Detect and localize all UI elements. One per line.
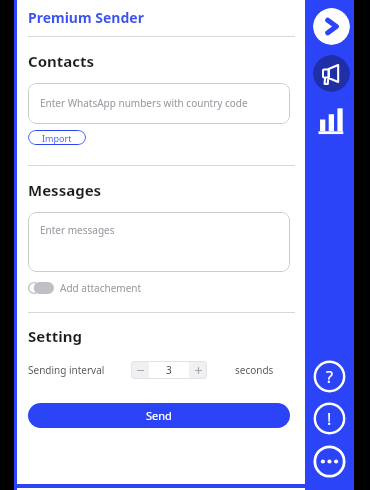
staticText: Sending interval [28, 363, 105, 377]
button[interactable]: Broadcast [313, 55, 350, 92]
staticText: 3 [166, 363, 172, 377]
button[interactable]: Enter WhatsApp numbers with country code [28, 83, 290, 124]
staticText: seconds [235, 363, 274, 377]
staticText: Add attachement [60, 281, 142, 295]
staticText: Premium Sender [28, 8, 144, 27]
staticText: Setting [28, 326, 82, 346]
staticText: Enter WhatsApp numbers with country code [40, 96, 248, 110]
button[interactable]: Information [313, 402, 346, 435]
button[interactable]: Statistics [316, 104, 347, 135]
button[interactable]: Import [28, 130, 86, 145]
staticText: Import [42, 132, 72, 144]
staticText: ! [327, 408, 332, 430]
button[interactable]: Expand [313, 8, 350, 45]
button[interactable]: Add attachement [28, 279, 142, 297]
button[interactable]: More options [313, 445, 346, 478]
staticText: Messages [28, 180, 102, 200]
staticText: Send [146, 408, 172, 423]
button[interactable]: Increase interval [189, 361, 207, 379]
button[interactable]: Decrease interval [131, 361, 149, 379]
staticText: Enter messages [40, 223, 115, 237]
staticText: Contacts [28, 51, 95, 71]
button[interactable]: Help [313, 360, 346, 393]
button[interactable]: Enter messages [28, 212, 290, 272]
staticText: ? [326, 366, 333, 388]
button[interactable]: Send [28, 403, 290, 428]
